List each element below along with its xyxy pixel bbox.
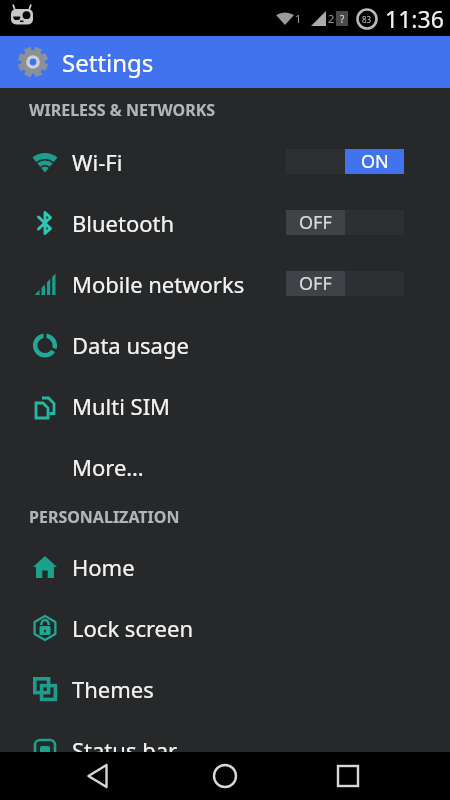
staticText: 11:36 [385,3,444,34]
staticText: ON [361,149,389,174]
button[interactable]: Lock screen [0,597,450,658]
staticText: Themes [72,674,154,704]
staticText: Settings [62,46,154,79]
staticText: Bluetooth [72,208,175,238]
staticText: Home [72,552,135,582]
staticText: PERSONALIZATION [29,506,180,528]
button[interactable]: More… [0,436,450,497]
button[interactable]: Home [0,536,450,597]
staticText: Mobile networks [72,269,245,299]
button[interactable] [334,762,362,790]
button[interactable] [84,762,112,790]
staticText: Wi-Fi [72,147,123,177]
button[interactable]: ON [286,149,404,174]
staticText: Data usage [72,330,189,360]
staticText: 2 [328,11,335,26]
button[interactable]: Status bar [0,719,450,780]
button[interactable]: Data usage [0,314,450,375]
staticText: OFF [299,210,332,235]
staticText: More… [72,452,144,482]
staticText: OFF [299,271,332,296]
staticText: Status bar [72,735,178,765]
button[interactable]: Bluetooth [0,192,450,253]
button[interactable]: Wi-Fi [0,131,450,192]
staticText: Multi SIM [72,391,171,421]
staticText: 83 [362,14,372,25]
button[interactable]: Settings [0,36,450,88]
button[interactable]: OFF [286,210,404,235]
button[interactable] [211,762,239,790]
button[interactable]: Mobile networks [0,253,450,314]
button[interactable]: Multi SIM [0,375,450,436]
staticText: Lock screen [72,613,194,643]
button[interactable]: Themes [0,658,450,719]
staticText: 1 [295,11,302,26]
staticText: WIRELESS & NETWORKS [29,99,216,121]
staticText: ? [340,12,345,26]
button[interactable]: OFF [286,271,404,296]
